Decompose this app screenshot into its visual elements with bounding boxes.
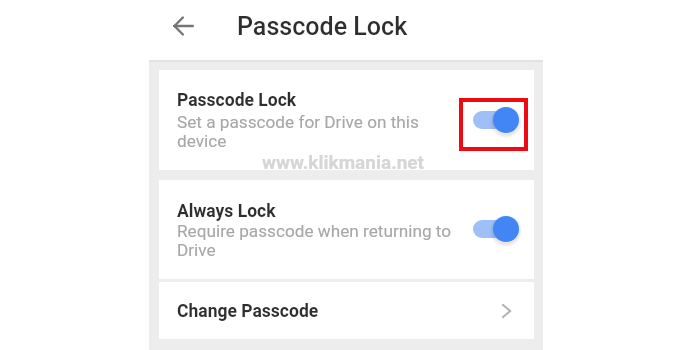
staticText: www.klikmania.net [262,151,425,173]
button[interactable]: Change Passcode [159,282,534,339]
staticText: Always Lock [177,201,276,222]
staticText: Set a passcode for Drive on this device [177,112,419,151]
staticText: Change Passcode [177,301,319,322]
staticText: Passcode Lock [237,12,408,41]
button[interactable]: Always Lock [159,180,534,279]
button[interactable]: Always Lock toggle, on [473,214,519,244]
staticText: Passcode Lock [177,90,297,111]
button[interactable]: Passcode Lock [159,70,534,170]
staticText: Require passcode when returning to Drive [177,221,452,260]
button[interactable]: Back [167,10,199,42]
button[interactable]: Passcode Lock toggle, on [473,105,519,135]
